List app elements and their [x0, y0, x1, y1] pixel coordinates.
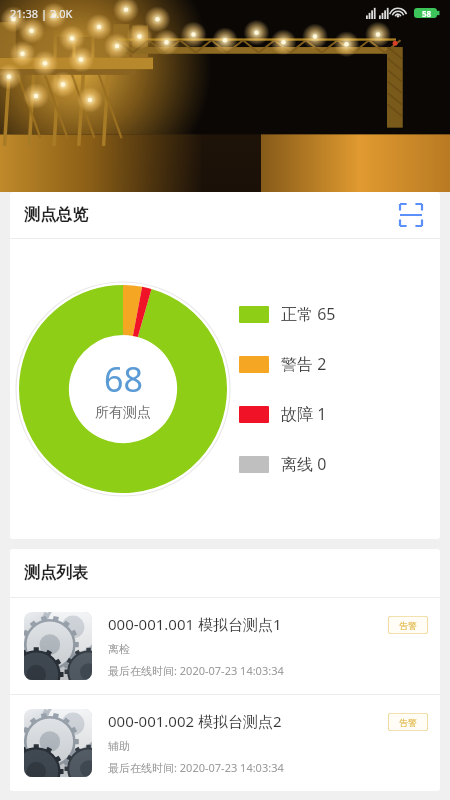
staticText: 辅助 [108, 739, 130, 753]
staticText: 68 [104, 356, 143, 402]
staticText: 58 [422, 8, 432, 19]
staticText: 警告 2 [281, 353, 327, 375]
staticText: 正常 65 [281, 303, 336, 325]
staticText: 告警 [399, 620, 417, 631]
staticText: 000-001.001 模拟台测点1 [108, 614, 282, 634]
staticText: 最后在线时间: 2020-07-23 14:03:34 [108, 663, 284, 678]
staticText: 最后在线时间: 2020-07-23 14:03:34 [108, 760, 284, 775]
staticText: 测点列表 [24, 563, 88, 583]
button[interactable]: 000-001.002 模拟台测点2 [10, 695, 440, 791]
staticText: 000-001.002 模拟台测点2 [108, 711, 282, 731]
staticText: 所有测点 [95, 404, 151, 422]
button[interactable]: 扫码 [396, 200, 426, 230]
staticText: 21:38 | 2.0K [10, 6, 73, 21]
staticText: 测点总览 [24, 205, 88, 225]
staticText: 离检 [108, 642, 130, 656]
staticText: 故障 1 [281, 403, 327, 425]
staticText: 告警 [399, 717, 417, 728]
staticText: 离线 0 [281, 453, 327, 475]
button[interactable]: 000-001.001 模拟台测点1 [10, 598, 440, 694]
